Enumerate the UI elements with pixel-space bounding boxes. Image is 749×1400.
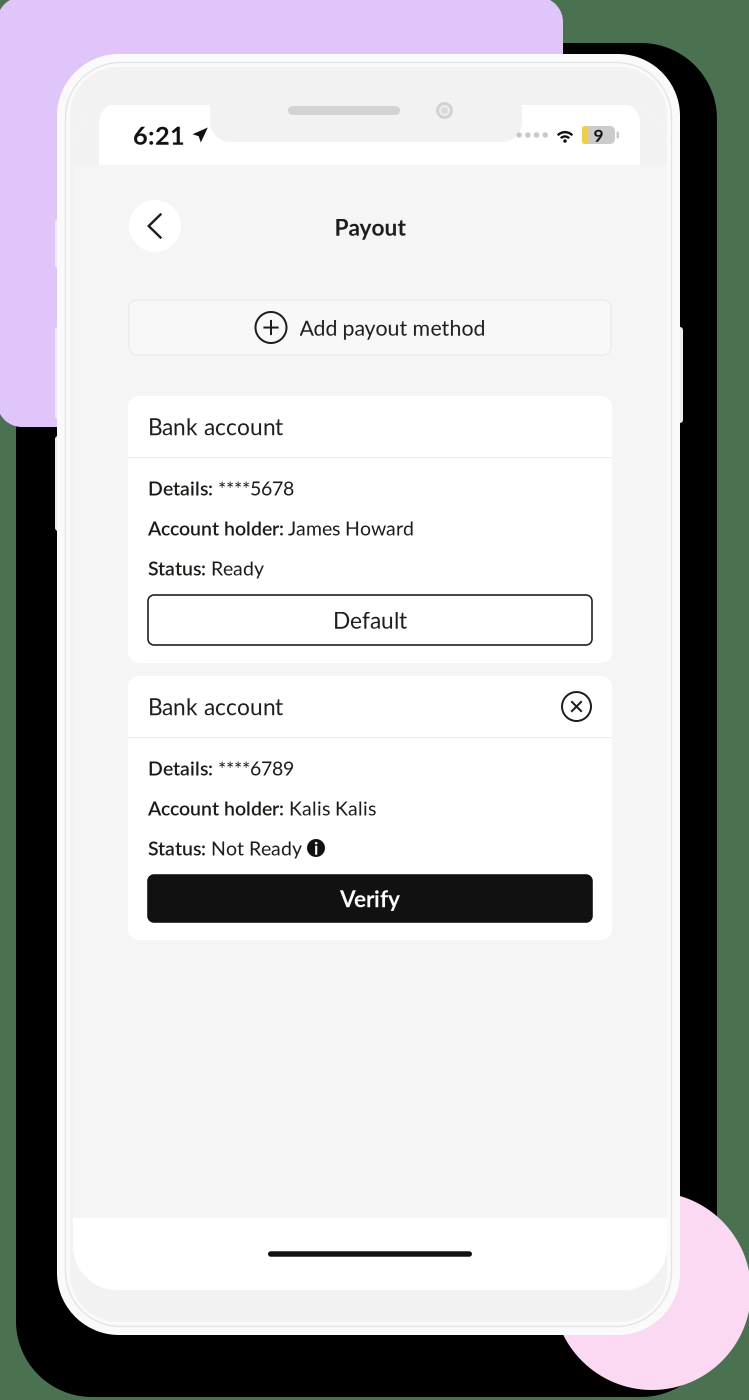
staticText: 6:21: [133, 120, 185, 150]
staticText: Account holder: Kalis Kalis: [148, 797, 376, 819]
button[interactable]: Add payout method: [129, 300, 611, 355]
button[interactable]: Back: [129, 200, 181, 252]
staticText: 9: [593, 125, 603, 145]
staticText: Status: Ready: [148, 557, 264, 579]
staticText: Bank account: [148, 693, 283, 720]
staticText: Details: ****5678: [148, 477, 294, 499]
staticText: Add payout method: [299, 315, 485, 340]
staticText: Account holder: James Howard: [148, 517, 414, 539]
staticText: Default: [333, 606, 407, 634]
button[interactable]: Remove payout method: [561, 691, 592, 722]
staticText: i: [314, 838, 318, 858]
staticText: Payout: [334, 213, 405, 241]
staticText: Details: ****6789: [148, 757, 294, 779]
staticText: Verify: [340, 885, 400, 912]
button[interactable]: Default: [148, 595, 592, 645]
button[interactable]: Verify: [148, 875, 592, 922]
staticText: Status: Not Ready: [148, 837, 302, 859]
staticText: Bank account: [148, 413, 283, 440]
